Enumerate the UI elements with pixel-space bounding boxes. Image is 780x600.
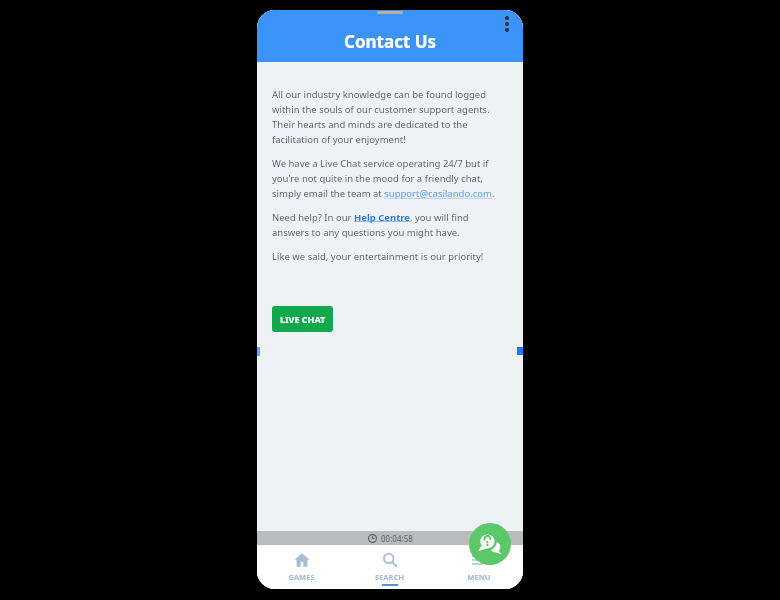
staticText: Contact Us: [344, 30, 437, 53]
button[interactable]: GAMES: [257, 545, 345, 589]
button[interactable]: SEARCH: [345, 545, 434, 589]
button[interactable]: MENU: [434, 545, 523, 589]
button[interactable]: More options: [495, 12, 519, 36]
staticText: MENU: [467, 572, 491, 582]
staticText: 00:04:58: [381, 533, 413, 544]
button[interactable]: LIVE CHAT: [272, 306, 333, 332]
staticText: Need help? In our Help Centre, you will …: [272, 211, 508, 239]
staticText: LIVE CHAT: [280, 313, 326, 325]
staticText: Like we said, your entertainment is our …: [272, 250, 484, 263]
staticText: GAMES: [288, 572, 315, 582]
staticText: We have a Live Chat service operating 24…: [272, 157, 508, 200]
staticText: All our industry knowledge can be found …: [272, 88, 508, 146]
staticText: SEARCH: [375, 572, 404, 582]
button[interactable]: Live chat support: [469, 523, 511, 565]
